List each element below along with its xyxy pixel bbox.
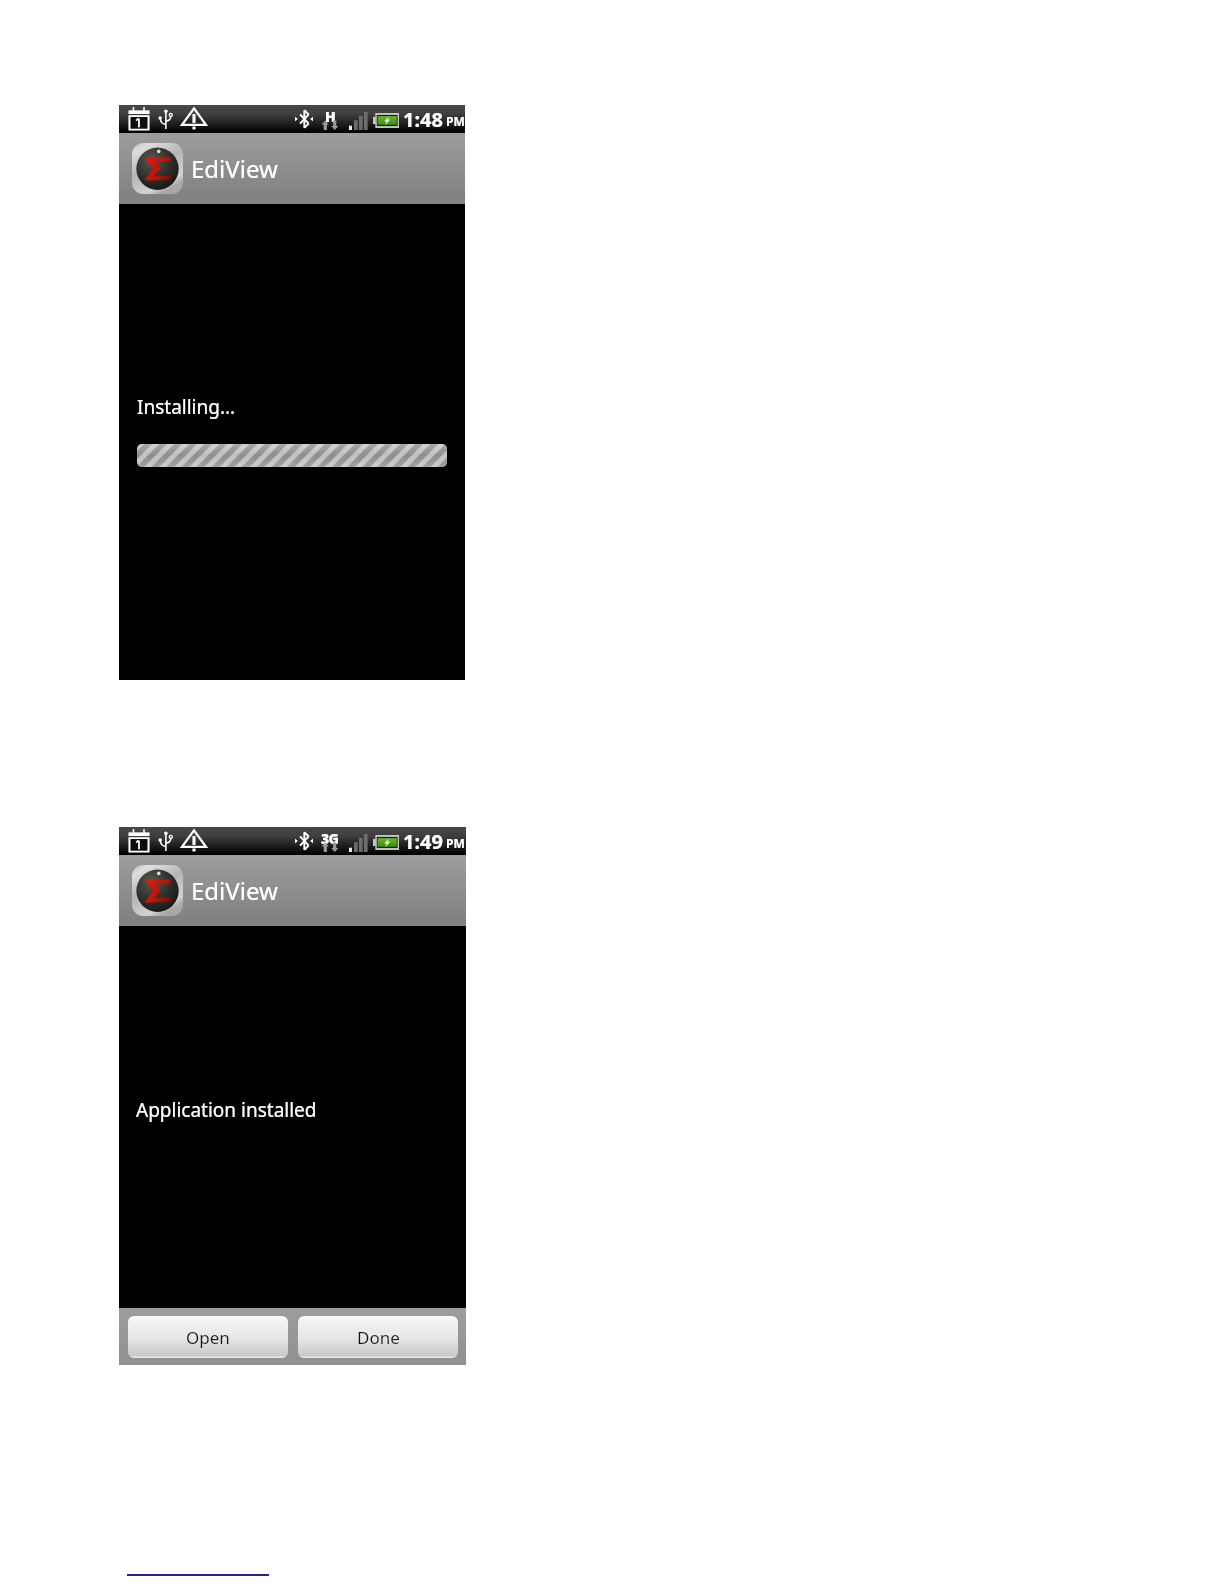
staticText: EdiView [191,152,278,185]
other: Mobile data [320,107,340,131]
other: Battery charging [373,113,399,128]
staticText: PM [446,835,465,851]
other: Mobile data [320,829,340,853]
staticText: 1:48 [403,106,443,133]
other: Calendar event [127,829,151,853]
staticText: Application installed [136,1097,317,1123]
button[interactable]: EdiView app icon [119,855,466,926]
other: Bluetooth on [295,831,313,851]
other: Warning [182,107,206,131]
staticText: PM [446,113,465,129]
other: Bluetooth on [295,109,313,129]
other: Warning [182,829,206,853]
button[interactable]: Open [128,1316,288,1358]
staticText: 1:49 [403,828,443,855]
other: USB connected [156,107,175,131]
other: EdiView app icon [132,865,183,916]
other: Signal strength [349,112,368,130]
other: Signal strength [349,834,368,852]
other: USB connected [156,829,175,853]
button[interactable]: Done [298,1316,458,1358]
staticText: Open [186,1326,230,1349]
staticText: H [325,107,336,126]
other: Calendar event [127,107,151,131]
staticText: EdiView [191,874,278,907]
staticText: Done [357,1326,400,1349]
button[interactable]: EdiView app icon [119,133,465,204]
other: Battery charging [373,835,399,850]
other: EdiView app icon [132,143,183,194]
staticText: Installing... [137,394,236,420]
staticText: 3G [321,829,339,848]
